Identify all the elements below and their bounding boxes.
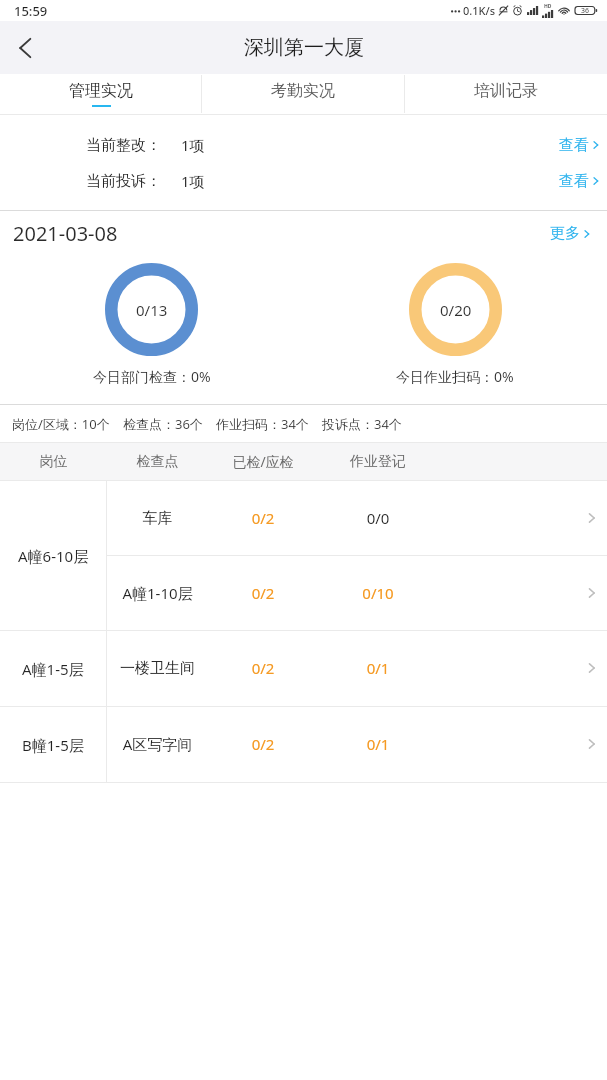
staticText: A幢1-5层 bbox=[22, 659, 84, 679]
staticText: 岗位 bbox=[0, 453, 107, 471]
button[interactable]: A区写字间 bbox=[107, 707, 607, 781]
button[interactable]: 当前整改： bbox=[0, 128, 607, 162]
staticText: 已检/应检 bbox=[208, 452, 318, 471]
button[interactable]: 车库 bbox=[107, 481, 607, 555]
staticText: 0/1 bbox=[318, 658, 438, 678]
staticText: 更多 bbox=[550, 224, 580, 243]
button[interactable]: Back bbox=[0, 21, 52, 74]
staticText: 投诉点：34个 bbox=[322, 415, 402, 433]
staticText: 今日部门检查：0% bbox=[93, 367, 211, 386]
staticText: 0/2 bbox=[208, 734, 318, 754]
button[interactable]: 更多 bbox=[550, 218, 594, 249]
staticText: 今日作业扫码：0% bbox=[396, 367, 514, 386]
staticText: 考勤实况 bbox=[271, 81, 335, 101]
staticText: 当前投诉： bbox=[86, 172, 161, 191]
staticText: 查看 bbox=[559, 136, 589, 155]
staticText: 0.1K/s bbox=[463, 3, 496, 18]
staticText: A幢6-10层 bbox=[18, 546, 89, 566]
staticText: A区写字间 bbox=[107, 734, 208, 754]
staticText: 岗位/区域：10个 bbox=[12, 415, 110, 433]
staticText: 车库 bbox=[107, 509, 208, 528]
staticText: 1项 bbox=[181, 135, 205, 155]
staticText: 0/2 bbox=[208, 658, 318, 678]
staticText: 36 bbox=[581, 6, 590, 16]
button[interactable]: 当前投诉： bbox=[0, 164, 607, 198]
staticText: 0/0 bbox=[318, 508, 438, 528]
staticText: B幢1-5层 bbox=[22, 735, 84, 755]
staticText: 管理实况 bbox=[69, 81, 133, 101]
staticText: 查看 bbox=[559, 172, 589, 191]
staticText: 作业登记 bbox=[318, 453, 438, 471]
staticText: 2021-03-08 bbox=[13, 220, 118, 247]
staticText: 15:59 bbox=[14, 2, 48, 20]
staticText: 0/2 bbox=[208, 508, 318, 528]
staticText: 深圳第一大厦 bbox=[244, 35, 364, 60]
staticText: 一楼卫生间 bbox=[107, 659, 208, 678]
staticText: 0/1 bbox=[318, 734, 438, 754]
staticText: 0/10 bbox=[318, 583, 438, 603]
button[interactable]: A幢1-10层 bbox=[107, 556, 607, 630]
button[interactable]: 一楼卫生间 bbox=[107, 631, 607, 705]
staticText: A幢1-10层 bbox=[107, 583, 208, 603]
staticText: 作业扫码：34个 bbox=[216, 415, 309, 433]
staticText: 0/2 bbox=[208, 583, 318, 603]
staticText: 当前整改： bbox=[86, 136, 161, 155]
staticText: 检查点：36个 bbox=[123, 415, 203, 433]
button[interactable]: 培训记录 bbox=[405, 74, 607, 114]
staticText: 培训记录 bbox=[474, 81, 538, 101]
staticText: 检查点 bbox=[107, 453, 208, 471]
button[interactable]: 考勤实况 bbox=[202, 74, 404, 114]
staticText: HD bbox=[544, 3, 552, 10]
staticText: 0/20 bbox=[440, 300, 472, 320]
button[interactable]: 管理实况 bbox=[0, 74, 201, 114]
staticText: 1项 bbox=[181, 171, 205, 191]
staticText: 0/13 bbox=[136, 300, 168, 320]
